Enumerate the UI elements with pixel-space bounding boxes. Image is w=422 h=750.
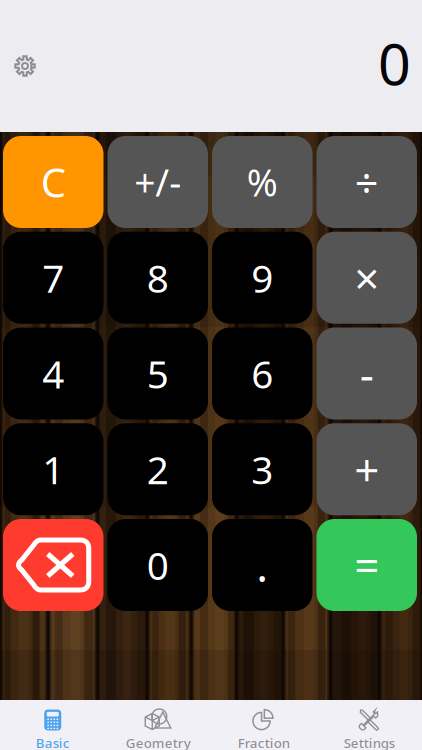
staticText: +/- (134, 157, 181, 207)
staticText: + (354, 440, 379, 498)
button[interactable]: = (316, 519, 417, 611)
button[interactable]: Settings (0, 41, 50, 91)
staticText: 8 (147, 252, 169, 303)
button[interactable]: 2 (107, 423, 208, 515)
staticText: × (354, 248, 379, 307)
button[interactable]: 7 (3, 232, 103, 324)
staticText: 4 (42, 348, 64, 399)
button[interactable]: 0 (107, 519, 208, 611)
staticText: 6 (251, 348, 273, 399)
button[interactable]: 8 (107, 232, 208, 324)
button[interactable]: 5 (107, 327, 208, 419)
button[interactable]: Basic (0, 700, 105, 750)
button[interactable]: - (316, 327, 417, 419)
button[interactable]: ÷ (316, 136, 417, 228)
staticText: Basic (36, 734, 70, 750)
staticText: Geometry (126, 734, 191, 750)
staticText: Fraction (238, 734, 290, 750)
button[interactable]: 6 (212, 327, 312, 419)
staticText: 0 (147, 539, 169, 591)
button[interactable]: C (3, 136, 103, 228)
button[interactable]: Delete (3, 519, 103, 611)
staticText: 5 (147, 348, 169, 399)
button[interactable]: Geometry (105, 700, 211, 750)
staticText: ÷ (355, 155, 379, 209)
staticText: Settings (344, 734, 395, 750)
staticText: 7 (42, 252, 64, 303)
button[interactable]: +/- (107, 136, 208, 228)
staticText: . (256, 536, 268, 594)
staticText: 0 (378, 25, 411, 101)
staticText: 2 (147, 444, 169, 495)
button[interactable]: . (212, 519, 312, 611)
button[interactable]: % (212, 136, 312, 228)
button[interactable]: 4 (3, 327, 103, 419)
staticText: 1 (42, 444, 64, 495)
button[interactable]: + (316, 423, 417, 515)
button[interactable]: 9 (212, 232, 312, 324)
staticText: 3 (251, 444, 273, 495)
staticText: C (41, 155, 66, 208)
button[interactable]: 3 (212, 423, 312, 515)
button[interactable]: × (316, 232, 417, 324)
staticText: - (360, 344, 374, 403)
staticText: = (354, 536, 379, 594)
button[interactable]: Fraction (211, 700, 316, 750)
staticText: % (247, 157, 278, 207)
staticText: 9 (251, 252, 273, 303)
button[interactable]: Settings (316, 700, 422, 750)
button[interactable]: 1 (3, 423, 103, 515)
